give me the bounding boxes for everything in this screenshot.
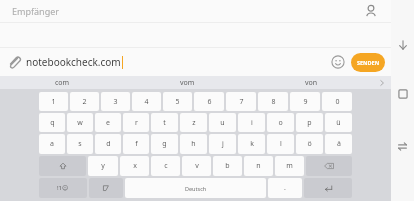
button[interactable]: 6: [194, 92, 224, 111]
button[interactable]: Emoji: [330, 54, 346, 70]
button[interactable]: h: [180, 134, 207, 154]
button[interactable]: Kontakt hinzufügen: [363, 3, 379, 19]
button[interactable]: Empfänger: [0, 0, 391, 22]
staticText: s: [78, 139, 82, 149]
button[interactable]: .: [268, 178, 302, 198]
button[interactable]: g: [151, 134, 178, 154]
button[interactable]: ü: [325, 113, 352, 132]
button[interactable]: 1: [39, 92, 68, 111]
staticText: Deutsch: [185, 185, 207, 192]
staticText: y: [101, 161, 105, 171]
staticText: d: [106, 139, 111, 149]
button[interactable]: t: [151, 113, 178, 132]
button[interactable]: ö: [296, 134, 323, 154]
button[interactable]: Wechseln: [396, 140, 409, 153]
button[interactable]: Zurück: [396, 38, 410, 52]
button[interactable]: Letzte Apps: [397, 88, 409, 100]
button[interactable]: com: [0, 76, 125, 89]
staticText: 2: [82, 97, 87, 107]
staticText: notebookcheck.com: [26, 55, 121, 69]
staticText: u: [220, 118, 225, 128]
button[interactable]: Eingabe: [304, 178, 352, 198]
staticText: n: [256, 161, 261, 171]
staticText: .: [284, 183, 286, 193]
button[interactable]: j: [209, 134, 236, 154]
staticText: x: [133, 161, 137, 171]
button[interactable]: von: [249, 76, 373, 89]
button[interactable]: q: [39, 113, 65, 132]
staticText: i: [251, 118, 253, 128]
button[interactable]: o: [267, 113, 294, 132]
button[interactable]: Löschen: [306, 156, 352, 176]
button[interactable]: 7: [226, 92, 256, 111]
staticText: !1☺: [57, 184, 69, 192]
staticText: 3: [113, 97, 118, 107]
button[interactable]: e: [95, 113, 121, 132]
button[interactable]: m: [275, 156, 304, 176]
button[interactable]: SENDEN: [351, 53, 385, 72]
button[interactable]: Symbole: [39, 178, 87, 198]
staticText: e: [106, 118, 110, 128]
button[interactable]: 9: [290, 92, 320, 111]
staticText: k: [250, 139, 254, 149]
button[interactable]: b: [213, 156, 242, 176]
staticText: p: [307, 118, 312, 128]
staticText: a: [50, 139, 54, 149]
staticText: ä: [337, 139, 341, 149]
staticText: 8: [271, 97, 276, 107]
staticText: c: [164, 161, 168, 171]
staticText: com: [55, 78, 70, 88]
staticText: 0: [335, 97, 340, 107]
button[interactable]: w: [67, 113, 93, 132]
staticText: 9: [303, 97, 308, 107]
button[interactable]: 2: [70, 92, 99, 111]
button[interactable]: Deutsch: [125, 178, 266, 198]
button[interactable]: vom: [125, 76, 249, 89]
button[interactable]: y: [88, 156, 118, 176]
button[interactable]: r: [123, 113, 149, 132]
staticText: z: [192, 118, 196, 128]
button[interactable]: v: [182, 156, 211, 176]
button[interactable]: l: [267, 134, 294, 154]
button[interactable]: k: [238, 134, 265, 154]
staticText: h: [191, 139, 196, 149]
staticText: l: [280, 139, 282, 149]
staticText: b: [225, 161, 230, 171]
button[interactable]: Mehr Vorschläge: [373, 76, 391, 89]
button[interactable]: c: [151, 156, 180, 176]
button[interactable]: Anhang: [6, 54, 22, 70]
button[interactable]: n: [244, 156, 273, 176]
staticText: 5: [175, 97, 180, 107]
button[interactable]: 0: [322, 92, 352, 111]
button[interactable]: f: [123, 134, 149, 154]
button[interactable]: z: [180, 113, 207, 132]
staticText: w: [77, 118, 83, 128]
staticText: f: [135, 139, 138, 149]
staticText: SENDEN: [357, 59, 380, 66]
staticText: 7: [239, 97, 244, 107]
button[interactable]: a: [39, 134, 65, 154]
button[interactable]: s: [67, 134, 93, 154]
staticText: r: [135, 118, 138, 128]
button[interactable]: Handschrift: [89, 178, 123, 198]
staticText: vom: [180, 78, 195, 88]
staticText: o: [278, 118, 283, 128]
staticText: Empfänger: [12, 5, 59, 17]
button[interactable]: Umschalt: [39, 156, 86, 176]
staticText: ö: [307, 139, 312, 149]
button[interactable]: x: [120, 156, 149, 176]
button[interactable]: u: [209, 113, 236, 132]
button[interactable]: d: [95, 134, 121, 154]
staticText: g: [162, 139, 167, 149]
button[interactable]: 8: [258, 92, 288, 111]
staticText: m: [286, 161, 293, 171]
button[interactable]: p: [296, 113, 323, 132]
button[interactable]: 3: [101, 92, 130, 111]
button[interactable]: ä: [325, 134, 352, 154]
button[interactable]: 5: [163, 92, 192, 111]
staticText: von: [305, 78, 318, 88]
button[interactable]: i: [238, 113, 265, 132]
button[interactable]: 4: [132, 92, 161, 111]
staticText: j: [222, 139, 224, 149]
staticText: q: [50, 118, 55, 128]
